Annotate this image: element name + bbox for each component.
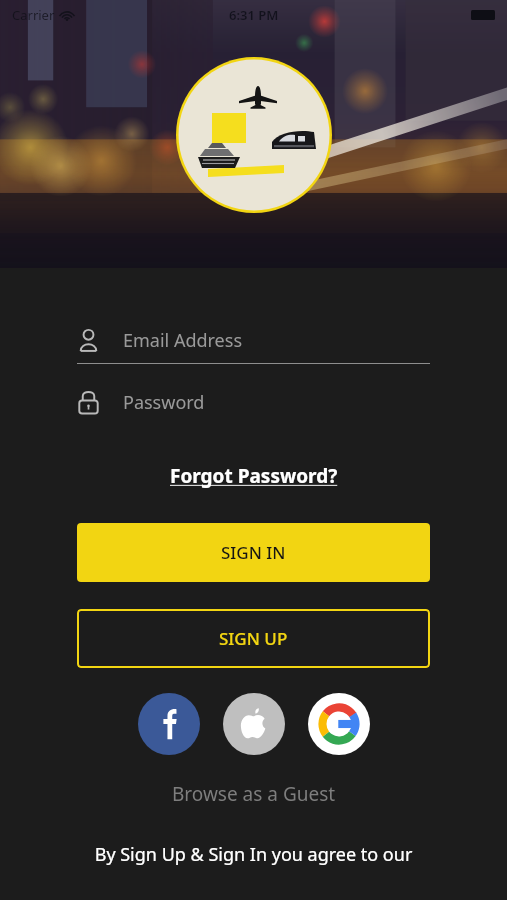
staticText: Forgot Password? [170,463,338,489]
button[interactable]: SIGN IN [77,523,430,582]
button[interactable]: Forgot Password? [166,461,342,491]
staticText: Browse as a Guest [172,781,336,807]
button[interactable]: Password [77,379,430,425]
button[interactable]: Sign in with Facebook [138,693,200,755]
button[interactable]: Sign in with Google [308,693,370,755]
staticText: Carrier [12,6,55,24]
staticText: SIGN IN [221,541,286,564]
button[interactable]: Browse as a Guest [166,778,342,810]
staticText: 6:31 PM [229,6,279,24]
staticText: By Sign Up & Sign In you agree to our [77,842,430,867]
button[interactable]: SIGN UP [77,609,430,668]
button[interactable]: Email address [77,317,430,364]
staticText: Password [123,390,205,415]
staticText: Email Address [123,328,243,353]
other: Password [77,389,100,415]
staticText: SIGN UP [219,627,288,650]
other: Email address [77,327,100,353]
button[interactable]: Sign in with Apple [223,693,285,755]
